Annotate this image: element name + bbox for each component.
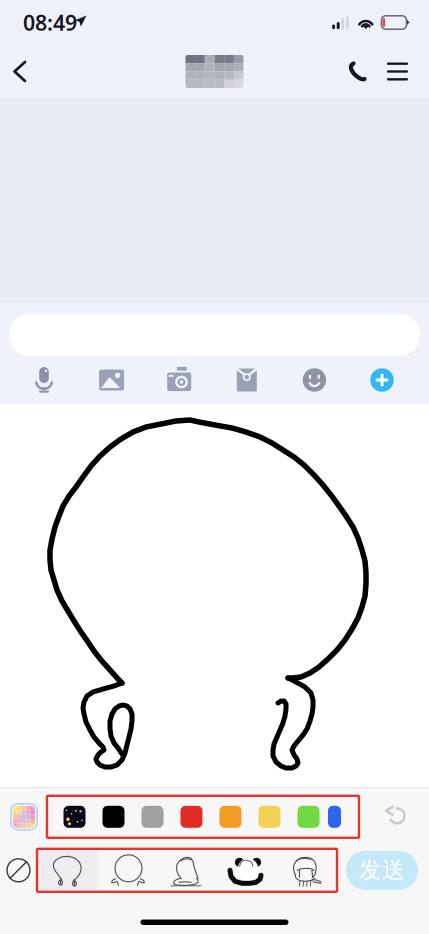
button[interactable]: Hair template — [37, 851, 98, 890]
button[interactable]: Gift — [221, 359, 273, 401]
button[interactable]: Voice message — [18, 359, 70, 401]
button[interactable]: Colour swatch — [211, 800, 250, 834]
button[interactable]: Photos — [86, 359, 138, 401]
button[interactable]: Camera — [153, 359, 205, 401]
button[interactable]: Call — [340, 50, 377, 93]
button[interactable]: Colour swatch — [94, 800, 133, 834]
staticText: 发送 — [359, 856, 405, 884]
button[interactable]: Baby template — [159, 851, 219, 890]
button[interactable]: Color picker — [1, 796, 47, 838]
button[interactable]: Pattern brush — [55, 800, 94, 834]
button[interactable]: Head template — [98, 851, 159, 890]
button[interactable]: No template — [0, 849, 37, 892]
button[interactable]: Colour swatch — [133, 800, 172, 834]
button[interactable]: Colour swatch — [289, 800, 328, 834]
button[interactable]: Menu — [377, 51, 418, 92]
staticText: 08:49 — [23, 8, 77, 37]
button[interactable]: Girl template — [277, 851, 337, 890]
button[interactable]: Colour swatch — [172, 800, 211, 834]
button[interactable]: Blue — [328, 800, 351, 834]
button[interactable]: Panda template — [219, 851, 277, 890]
button[interactable]: Colour swatch — [250, 800, 289, 834]
button[interactable]: Back — [0, 48, 39, 95]
button[interactable]: Stickers — [288, 359, 340, 401]
button[interactable]: 发送 — [346, 851, 418, 890]
button[interactable]: More — [356, 359, 408, 401]
button[interactable]: Undo — [375, 796, 419, 838]
